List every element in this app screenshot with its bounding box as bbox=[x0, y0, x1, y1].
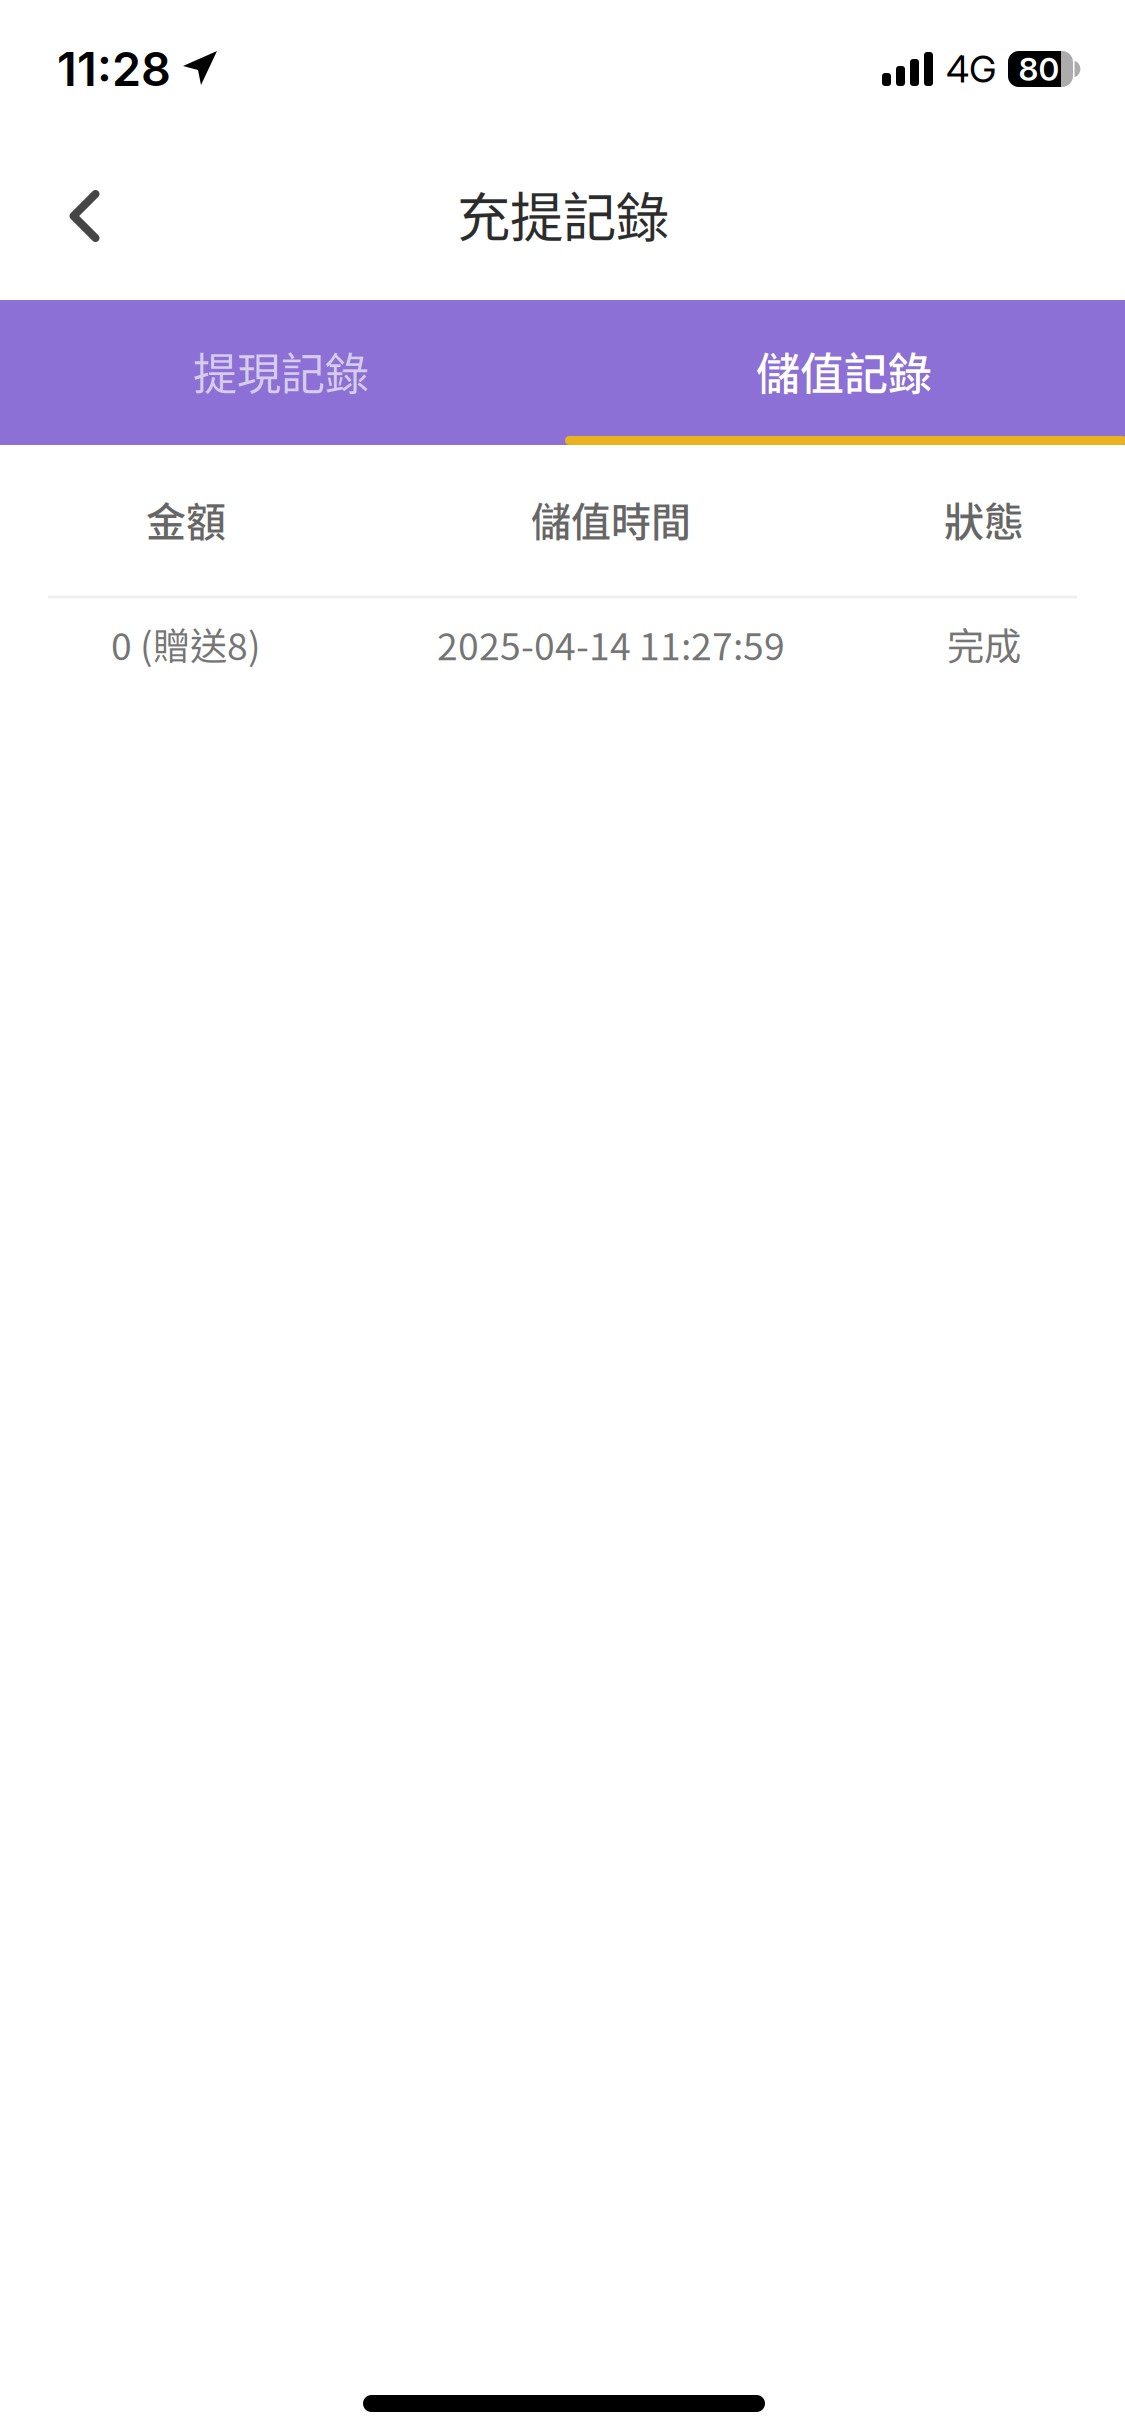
staticText: 11:28 bbox=[57, 41, 171, 97]
staticText: 狀態 bbox=[944, 490, 1024, 548]
staticText: 80 bbox=[1018, 50, 1059, 88]
staticText: 充提記錄 bbox=[457, 175, 669, 253]
staticText: 金額 bbox=[146, 490, 226, 548]
staticText: 0 (贈送8) bbox=[111, 617, 261, 671]
button[interactable]: 儲值記錄 bbox=[562, 303, 1125, 439]
button[interactable]: Back bbox=[15, 141, 153, 291]
staticText: 2025-04-14 11:27:59 bbox=[437, 617, 785, 671]
staticText: 儲值記錄 bbox=[756, 339, 932, 403]
staticText: 4G bbox=[946, 46, 996, 92]
button[interactable]: 提現記錄 bbox=[0, 303, 562, 439]
staticText: 完成 bbox=[947, 617, 1021, 671]
staticText: 提現記錄 bbox=[193, 339, 369, 403]
staticText: 儲值時間 bbox=[531, 490, 691, 548]
